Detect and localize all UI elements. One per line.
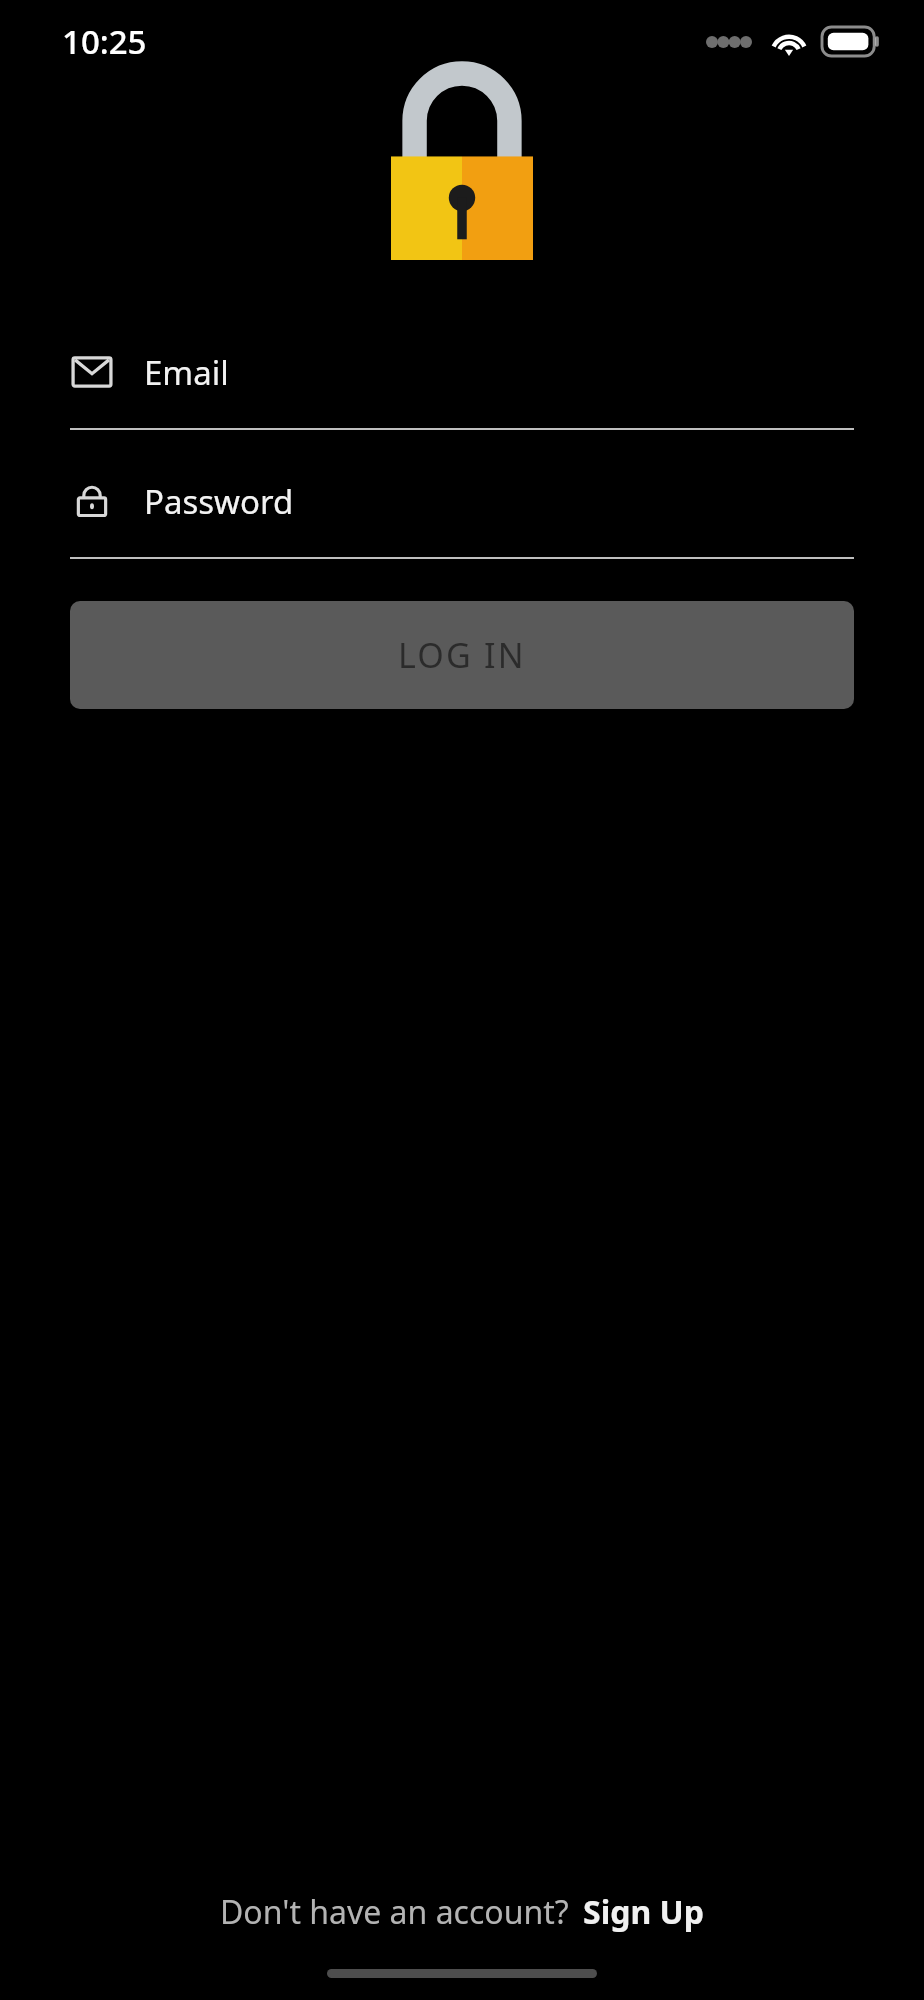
button[interactable]: LOG IN — [70, 601, 854, 709]
staticText: Sign Up — [583, 1890, 704, 1934]
button[interactable]: Don't have an account? — [196, 1880, 728, 1944]
button[interactable]: Email — [70, 342, 854, 430]
staticText: 10:25 — [62, 19, 147, 64]
staticText: Email — [144, 350, 229, 395]
staticText: Password — [144, 479, 294, 524]
staticText: Don't have an account? — [220, 1890, 569, 1934]
button[interactable]: Password — [70, 471, 854, 559]
staticText: LOG IN — [398, 632, 526, 678]
